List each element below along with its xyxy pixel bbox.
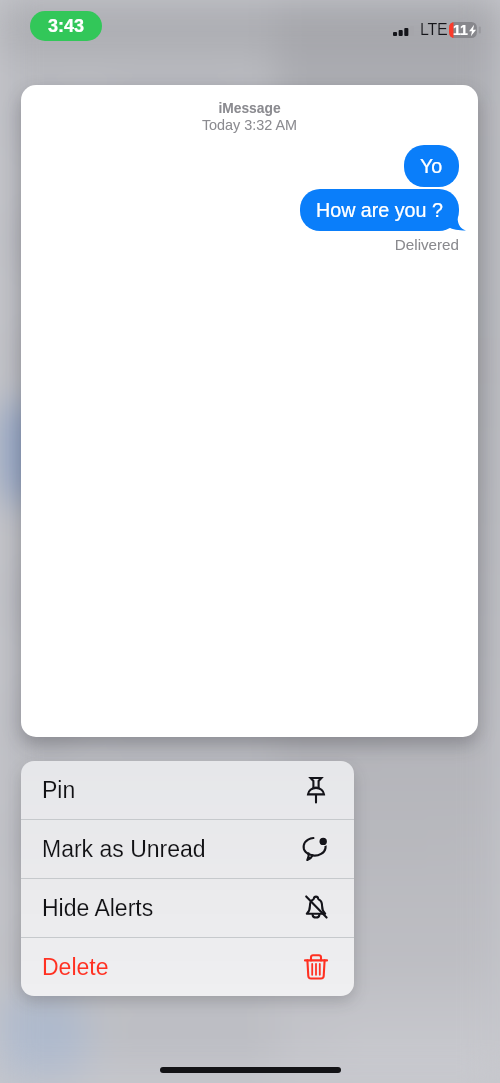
staticText: Today 3:32 AM [21, 117, 478, 133]
staticText: 11 [453, 22, 468, 38]
other: Pin [300, 774, 332, 806]
staticText: Hide Alerts [42, 895, 154, 921]
other: Hide Alerts [300, 892, 332, 924]
button[interactable]: Hide Alerts [21, 879, 354, 937]
staticText: iMessage [21, 101, 478, 116]
button[interactable]: 3:43 [30, 11, 102, 41]
staticText: Delete [42, 954, 109, 980]
staticText: How are you ? [316, 199, 443, 221]
staticText: 3:43 [48, 16, 85, 36]
button[interactable]: Delete [21, 938, 354, 996]
staticText: Delivered [21, 236, 459, 253]
button[interactable]: Pin [21, 761, 354, 819]
staticText: Yo [420, 155, 443, 177]
other: Mark as Unread [300, 833, 332, 865]
staticText: Mark as Unread [42, 836, 206, 862]
staticText: LTE [420, 21, 448, 39]
staticText: Pin [42, 777, 76, 803]
other: Delete [300, 951, 332, 983]
button[interactable]: Mark as Unread [21, 820, 354, 878]
